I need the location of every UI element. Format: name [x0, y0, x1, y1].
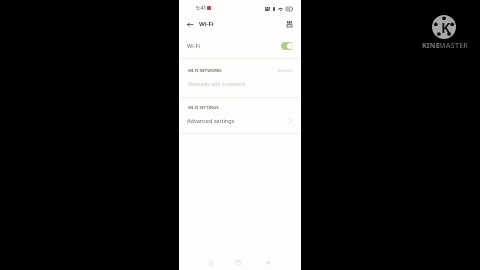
button[interactable]: Refresh: [275, 66, 296, 76]
staticText: Manually add a network: [188, 81, 246, 88]
button[interactable]: Scan QR code: [283, 18, 295, 30]
button[interactable]: Back: [262, 257, 273, 268]
staticText: Advanced settings: [187, 117, 235, 124]
staticText: K: [441, 18, 451, 37]
staticText: KINE: [422, 41, 440, 51]
staticText: WI-FI SETTINGS: [188, 105, 219, 111]
button[interactable]: Home: [233, 257, 244, 268]
button[interactable]: Wi-Fi: [179, 34, 301, 57]
button[interactable]: Recents: [206, 257, 217, 268]
staticText: Wi-Fi: [187, 42, 201, 50]
staticText: MASTER: [439, 41, 469, 51]
staticText: Wi-Fi: [199, 20, 214, 28]
button[interactable]: Manually add a network: [179, 76, 301, 93]
button[interactable]: Back: [184, 18, 196, 30]
button[interactable]: Advanced settings: [179, 111, 301, 130]
staticText: 5:41: [196, 4, 207, 11]
staticText: Refresh: [278, 68, 293, 74]
staticText: WI-FI NETWORKS: [188, 68, 222, 74]
